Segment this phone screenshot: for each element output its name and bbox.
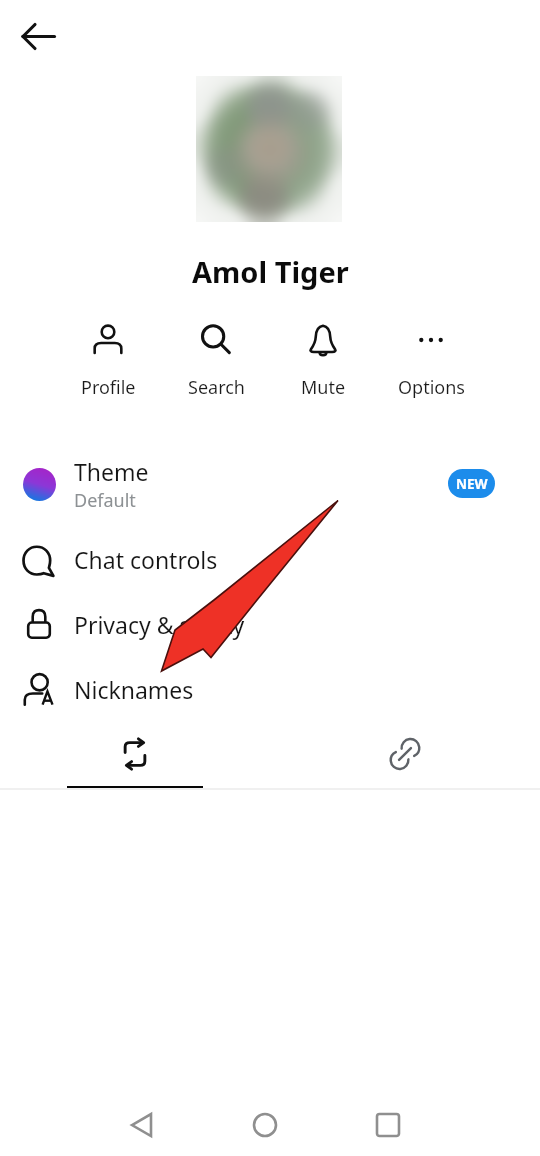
button[interactable]: Profile <box>54 313 162 405</box>
staticText: Options <box>398 375 465 400</box>
button[interactable]: Nicknames <box>0 657 540 721</box>
button[interactable]: Theme <box>0 451 540 517</box>
button[interactable]: Chat controls <box>0 527 540 591</box>
button[interactable]: Options <box>377 313 485 405</box>
staticText: Theme <box>74 456 149 487</box>
button[interactable]: Back <box>15 12 63 60</box>
button[interactable]: Links <box>270 726 540 788</box>
button[interactable]: Mute <box>269 313 377 405</box>
staticText: Mute <box>301 375 346 400</box>
staticText: Profile <box>81 375 136 400</box>
staticText: Nicknames <box>74 674 194 705</box>
button[interactable]: Shared media <box>0 726 270 788</box>
staticText: Amol Tiger <box>192 252 349 291</box>
staticText: Search <box>188 375 245 400</box>
staticText: Privacy & safety <box>74 609 245 640</box>
staticText: Default <box>74 488 136 513</box>
staticText: Chat controls <box>74 544 218 575</box>
staticText: NEW <box>456 475 488 493</box>
button[interactable]: Privacy & safety <box>0 592 540 656</box>
button[interactable]: Search <box>162 313 270 405</box>
